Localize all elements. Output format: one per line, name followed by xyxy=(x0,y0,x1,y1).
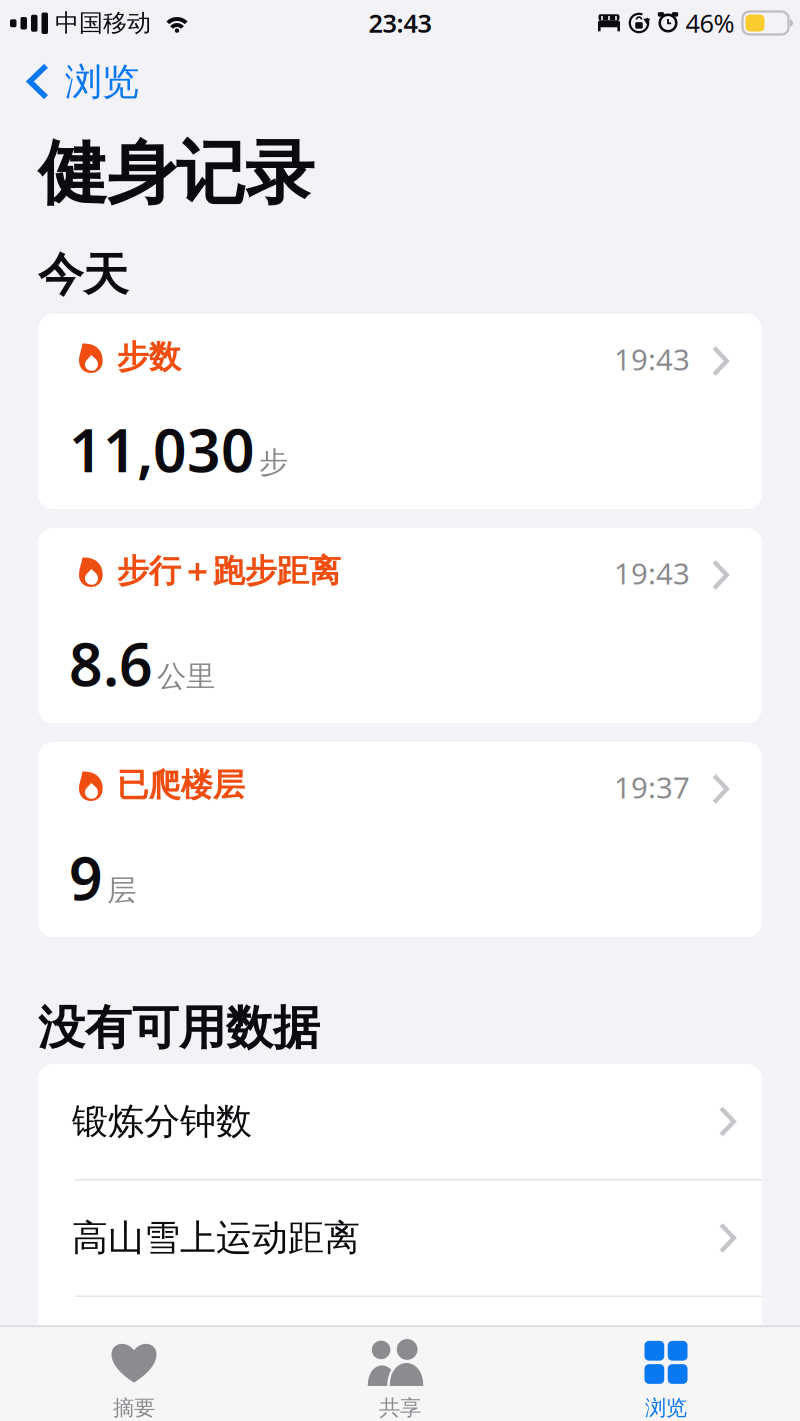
staticText: 9 xyxy=(69,838,103,916)
staticText: 共享 xyxy=(379,1395,421,1421)
staticText: 浏览 xyxy=(645,1395,687,1421)
staticText: 已爬楼层 xyxy=(117,765,245,805)
button[interactable]: 共享 xyxy=(267,1327,533,1421)
staticText: 19:37 xyxy=(614,767,690,806)
button[interactable]: 游泳距离 xyxy=(38,1297,762,1412)
staticText: 浏览 xyxy=(65,59,139,105)
staticText: 层 xyxy=(107,872,136,908)
staticText: 步行＋跑步距离 xyxy=(117,551,341,591)
staticText: 公里 xyxy=(157,658,215,694)
staticText: 19:43 xyxy=(614,339,690,378)
staticText: 锻炼分钟数 xyxy=(72,1099,252,1144)
staticText: 23:43 xyxy=(368,6,431,40)
staticText: 19:43 xyxy=(614,553,690,592)
staticText: 中国移动 xyxy=(55,8,151,38)
staticText: 高山雪上运动距离 xyxy=(72,1216,360,1260)
button[interactable]: 步数 xyxy=(38,314,762,509)
staticText: 健身记录 xyxy=(38,131,314,216)
button[interactable]: 锻炼分钟数 xyxy=(38,1064,762,1179)
button[interactable]: 浏览 xyxy=(533,1327,799,1421)
staticText: 46% xyxy=(685,6,734,40)
button[interactable]: 高山雪上运动距离 xyxy=(38,1180,762,1295)
staticText: 游泳距离 xyxy=(72,1332,216,1377)
staticText: 步 xyxy=(259,444,288,480)
staticText: 没有可用数据 xyxy=(38,999,320,1057)
staticText: 步数 xyxy=(117,337,181,377)
staticText: 摘要 xyxy=(113,1395,155,1421)
button[interactable]: 摘要 xyxy=(1,1327,267,1421)
staticText: 8.6 xyxy=(69,624,153,702)
staticText: 11,030 xyxy=(69,410,255,488)
staticText: 今天 xyxy=(38,247,128,303)
button[interactable]: 步行＋跑步距离 xyxy=(38,528,762,723)
button[interactable]: 已爬楼层 xyxy=(38,742,762,937)
button[interactable]: 浏览 xyxy=(0,43,159,105)
